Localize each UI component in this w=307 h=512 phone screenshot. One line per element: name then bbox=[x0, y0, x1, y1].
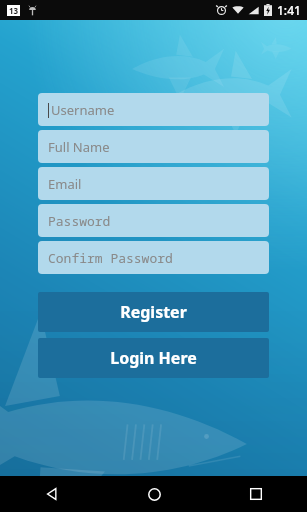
button[interactable]: Full Name bbox=[38, 130, 269, 163]
staticText: Username bbox=[51, 101, 115, 119]
staticText: 13 bbox=[9, 5, 19, 16]
button[interactable]: Home bbox=[103, 476, 205, 512]
button[interactable]: Login Here bbox=[38, 338, 269, 378]
button[interactable]: Register bbox=[38, 292, 269, 332]
staticText: 1:41 bbox=[277, 2, 301, 18]
button[interactable]: Confirm Password bbox=[38, 241, 269, 274]
staticText: Login Here bbox=[110, 347, 197, 369]
staticText: Password bbox=[48, 212, 111, 230]
staticText: Full Name bbox=[48, 138, 110, 156]
button[interactable]: Password bbox=[38, 204, 269, 237]
button[interactable]: Username bbox=[38, 93, 269, 126]
button[interactable]: Recent apps bbox=[205, 476, 307, 512]
staticText: Register bbox=[120, 301, 187, 323]
button[interactable]: Email bbox=[38, 167, 269, 200]
staticText: Email bbox=[48, 175, 82, 193]
staticText: Confirm Password bbox=[48, 249, 173, 267]
button[interactable]: Back bbox=[0, 476, 103, 512]
